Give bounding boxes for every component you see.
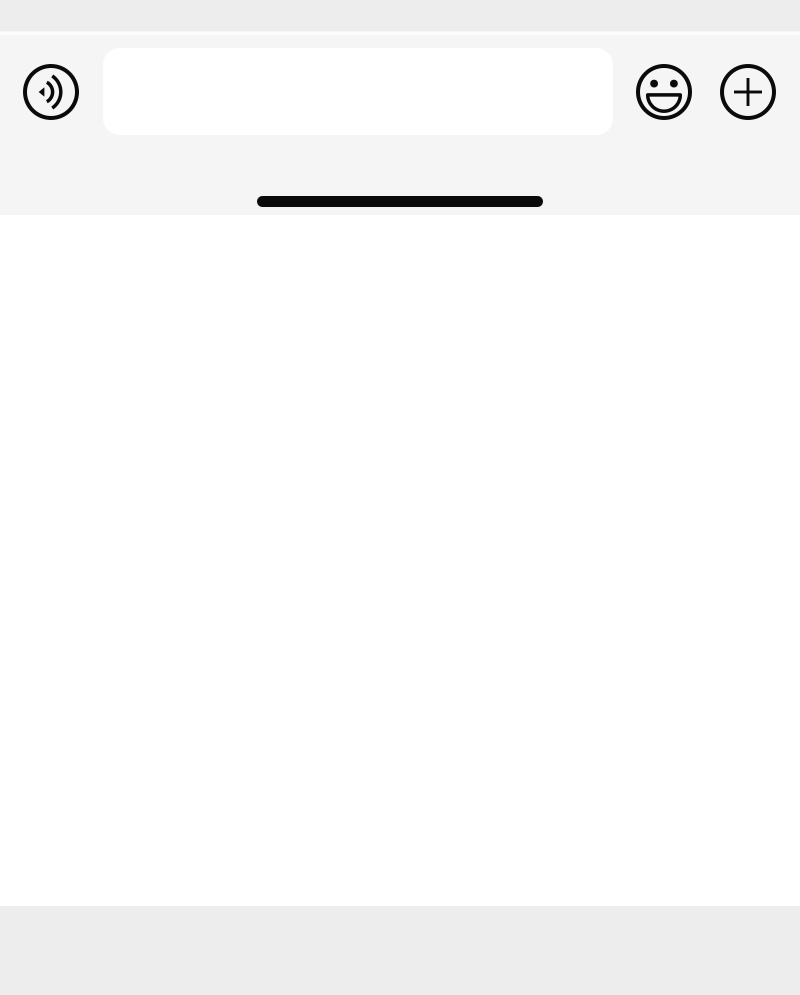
button[interactable]: Add attachment <box>711 47 785 137</box>
button[interactable]: Stickers <box>627 47 701 137</box>
button[interactable]: Record audio message <box>14 47 88 137</box>
